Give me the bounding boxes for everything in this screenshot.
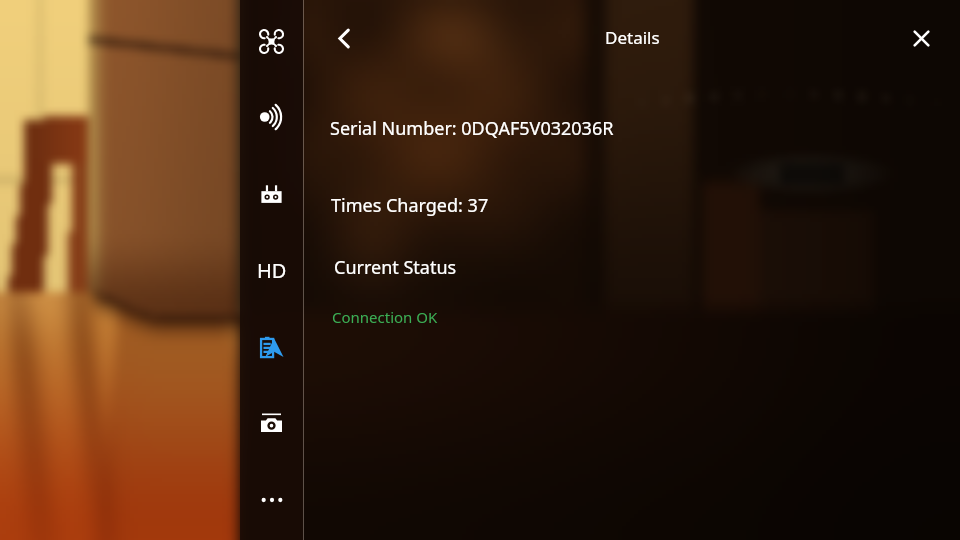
staticText: Details [605,26,660,49]
button[interactable]: More [240,464,303,536]
button[interactable]: Close [897,14,945,62]
button[interactable]: Signal [240,81,303,153]
button[interactable]: Camera [240,387,303,459]
staticText: Current Status [334,255,457,280]
button[interactable]: Aircraft status [240,5,303,77]
button[interactable]: Back [320,14,368,62]
button[interactable]: Checklist [240,311,303,383]
button[interactable]: Remote controller [240,158,303,230]
staticText: Times Charged: 37 [331,193,489,218]
staticText: Serial Number: 0DQAF5V032036R [330,116,614,141]
button[interactable]: HD video [240,234,303,306]
staticText: Connection OK [332,307,438,327]
staticText: HD [257,257,287,284]
